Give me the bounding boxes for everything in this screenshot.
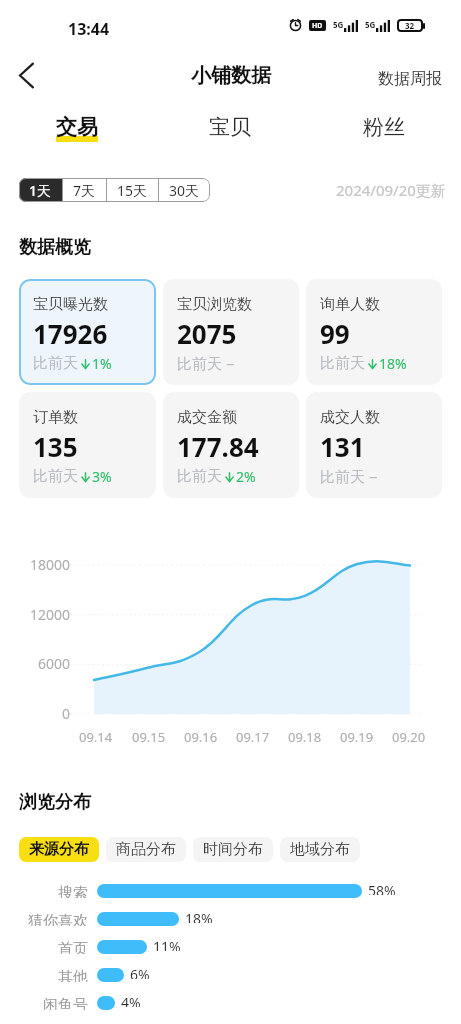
button[interactable]: 数据周报 bbox=[362, 59, 461, 99]
staticText: 2024/09/20更新 bbox=[336, 180, 446, 200]
staticText: 5G bbox=[365, 19, 376, 30]
staticText: 58% bbox=[368, 881, 396, 895]
staticText: 18% bbox=[185, 909, 213, 923]
staticText: 09.16 bbox=[184, 728, 218, 746]
staticText: 13:44 bbox=[68, 18, 110, 40]
staticText: 0 bbox=[62, 704, 71, 723]
button[interactable]: 时间分布 bbox=[193, 837, 273, 862]
staticText: 18000 bbox=[30, 555, 71, 574]
staticText: 1天 bbox=[29, 181, 52, 200]
staticText: 2% bbox=[236, 467, 256, 486]
button[interactable]: 询单人数 bbox=[306, 279, 442, 385]
staticText: 商品分布 bbox=[116, 840, 176, 859]
button[interactable]: 交易 bbox=[0, 101, 153, 153]
staticText: 32 bbox=[405, 20, 415, 31]
staticText: 30天 bbox=[169, 181, 200, 200]
staticText: 地域分布 bbox=[290, 840, 350, 859]
button[interactable]: 成交人数 bbox=[306, 392, 442, 498]
button[interactable]: 猜你喜欢 bbox=[0, 912, 461, 940]
button[interactable]: 粉丝 bbox=[307, 101, 461, 153]
staticText: 2075 bbox=[177, 316, 237, 351]
staticText: 3% bbox=[92, 467, 112, 486]
button[interactable]: 其他 bbox=[0, 968, 461, 996]
staticText: 09.19 bbox=[340, 728, 374, 746]
staticText: 6000 bbox=[38, 654, 71, 673]
button[interactable]: 1天 bbox=[19, 178, 62, 202]
staticText: 比前天 bbox=[177, 355, 222, 374]
button[interactable]: 商品分布 bbox=[106, 837, 186, 862]
staticText: 订单数 bbox=[33, 408, 78, 427]
staticText: 比前天 bbox=[320, 468, 365, 487]
button[interactable]: 闲鱼号 bbox=[0, 996, 461, 1010]
button[interactable]: Back bbox=[4, 53, 48, 97]
button[interactable]: 7天 bbox=[63, 178, 106, 202]
staticText: 成交人数 bbox=[320, 408, 380, 427]
staticText: 12000 bbox=[30, 605, 71, 624]
staticText: 比前天 bbox=[177, 467, 222, 486]
staticText: HD bbox=[312, 21, 323, 31]
button[interactable]: 30天 bbox=[159, 178, 210, 202]
staticText: 比前天 bbox=[33, 467, 78, 486]
staticText: 宝贝曝光数 bbox=[33, 295, 108, 314]
staticText: − bbox=[365, 467, 378, 487]
staticText: 18% bbox=[379, 354, 407, 373]
staticText: 询单人数 bbox=[320, 295, 380, 314]
staticText: 09.18 bbox=[288, 728, 322, 746]
button[interactable]: 首页 bbox=[0, 940, 461, 968]
staticText: 17926 bbox=[33, 316, 108, 351]
staticText: 数据周报 bbox=[378, 69, 442, 89]
staticText: 09.20 bbox=[392, 728, 426, 746]
staticText: 来源分布 bbox=[29, 840, 89, 859]
button[interactable]: 来源分布 bbox=[19, 837, 99, 862]
staticText: 时间分布 bbox=[203, 840, 263, 859]
staticText: 135 bbox=[33, 429, 78, 464]
button[interactable]: 宝贝 bbox=[153, 101, 307, 153]
staticText: 闲鱼号 bbox=[43, 996, 88, 1010]
staticText: 比前天 bbox=[33, 354, 78, 373]
staticText: − bbox=[222, 354, 235, 374]
staticText: 09.14 bbox=[79, 728, 113, 746]
button[interactable]: 成交金额 bbox=[163, 392, 299, 498]
staticText: 131 bbox=[320, 429, 365, 464]
staticText: 11% bbox=[153, 937, 181, 951]
button[interactable]: 15天 bbox=[107, 178, 158, 202]
staticText: 交易 bbox=[56, 114, 98, 140]
staticText: 猜你喜欢 bbox=[28, 912, 88, 926]
staticText: 小铺数据 bbox=[191, 63, 271, 88]
staticText: 09.17 bbox=[236, 728, 270, 746]
staticText: 15天 bbox=[117, 181, 148, 200]
button[interactable]: 订单数 bbox=[19, 392, 156, 498]
staticText: 7天 bbox=[73, 181, 96, 200]
staticText: 首页 bbox=[58, 940, 88, 954]
staticText: 其他 bbox=[58, 968, 88, 982]
staticText: 99 bbox=[320, 316, 350, 351]
staticText: 粉丝 bbox=[363, 114, 405, 140]
staticText: 1% bbox=[92, 354, 112, 373]
staticText: 宝贝浏览数 bbox=[177, 295, 252, 314]
staticText: 数据概览 bbox=[19, 236, 91, 259]
staticText: 宝贝 bbox=[209, 114, 251, 140]
staticText: 09.15 bbox=[132, 728, 166, 746]
staticText: 搜索 bbox=[58, 884, 88, 898]
staticText: 浏览分布 bbox=[19, 791, 91, 814]
button[interactable]: 搜索 bbox=[0, 884, 461, 912]
staticText: 比前天 bbox=[320, 354, 365, 373]
button[interactable]: 宝贝浏览数 bbox=[163, 279, 299, 385]
button[interactable]: 地域分布 bbox=[280, 837, 360, 862]
button[interactable]: 宝贝曝光数 bbox=[19, 279, 156, 385]
staticText: 177.84 bbox=[177, 429, 259, 464]
staticText: 6% bbox=[130, 965, 150, 979]
staticText: 4% bbox=[121, 993, 141, 1007]
staticText: 5G bbox=[333, 19, 344, 30]
staticText: 成交金额 bbox=[177, 408, 237, 427]
